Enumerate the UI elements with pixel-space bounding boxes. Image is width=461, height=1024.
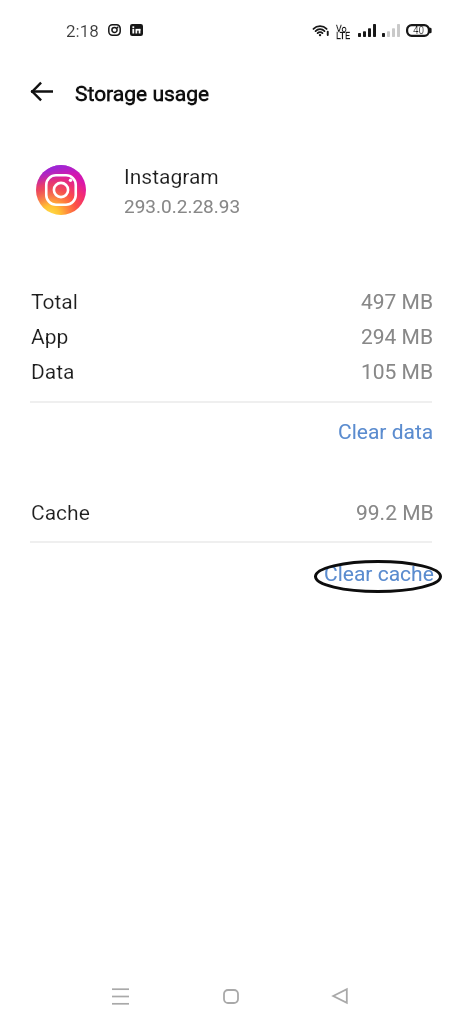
- staticText: Storage usage: [75, 82, 210, 107]
- button[interactable]: Clear data: [326, 412, 446, 452]
- staticText: Clear data: [338, 420, 434, 444]
- staticText: Vo: [336, 24, 347, 35]
- staticText: Cache: [31, 501, 90, 526]
- button[interactable]: Recent apps: [96, 972, 144, 1020]
- staticText: 2:18: [66, 21, 99, 41]
- button[interactable]: App: [0, 322, 461, 352]
- button[interactable]: Total: [0, 287, 461, 317]
- button[interactable]: Data: [0, 357, 461, 387]
- staticText: 105 MB: [361, 360, 434, 385]
- staticText: Instagram: [124, 165, 219, 190]
- staticText: 294 MB: [361, 325, 434, 350]
- button[interactable]: Back: [19, 69, 63, 113]
- staticText: Total: [31, 290, 78, 315]
- staticText: LTE: [336, 31, 351, 42]
- button[interactable]: Home: [207, 972, 255, 1020]
- staticText: Data: [31, 360, 75, 385]
- staticText: 99.2 MB: [356, 501, 434, 526]
- staticText: 497 MB: [361, 290, 434, 315]
- staticText: Clear cache: [324, 562, 434, 586]
- button[interactable]: Cache: [0, 498, 461, 528]
- staticText: App: [31, 325, 69, 350]
- button[interactable]: Back: [316, 972, 364, 1020]
- button[interactable]: Clear cache: [312, 554, 446, 594]
- staticText: 40: [413, 25, 425, 37]
- staticText: 293.0.2.28.93: [124, 195, 241, 217]
